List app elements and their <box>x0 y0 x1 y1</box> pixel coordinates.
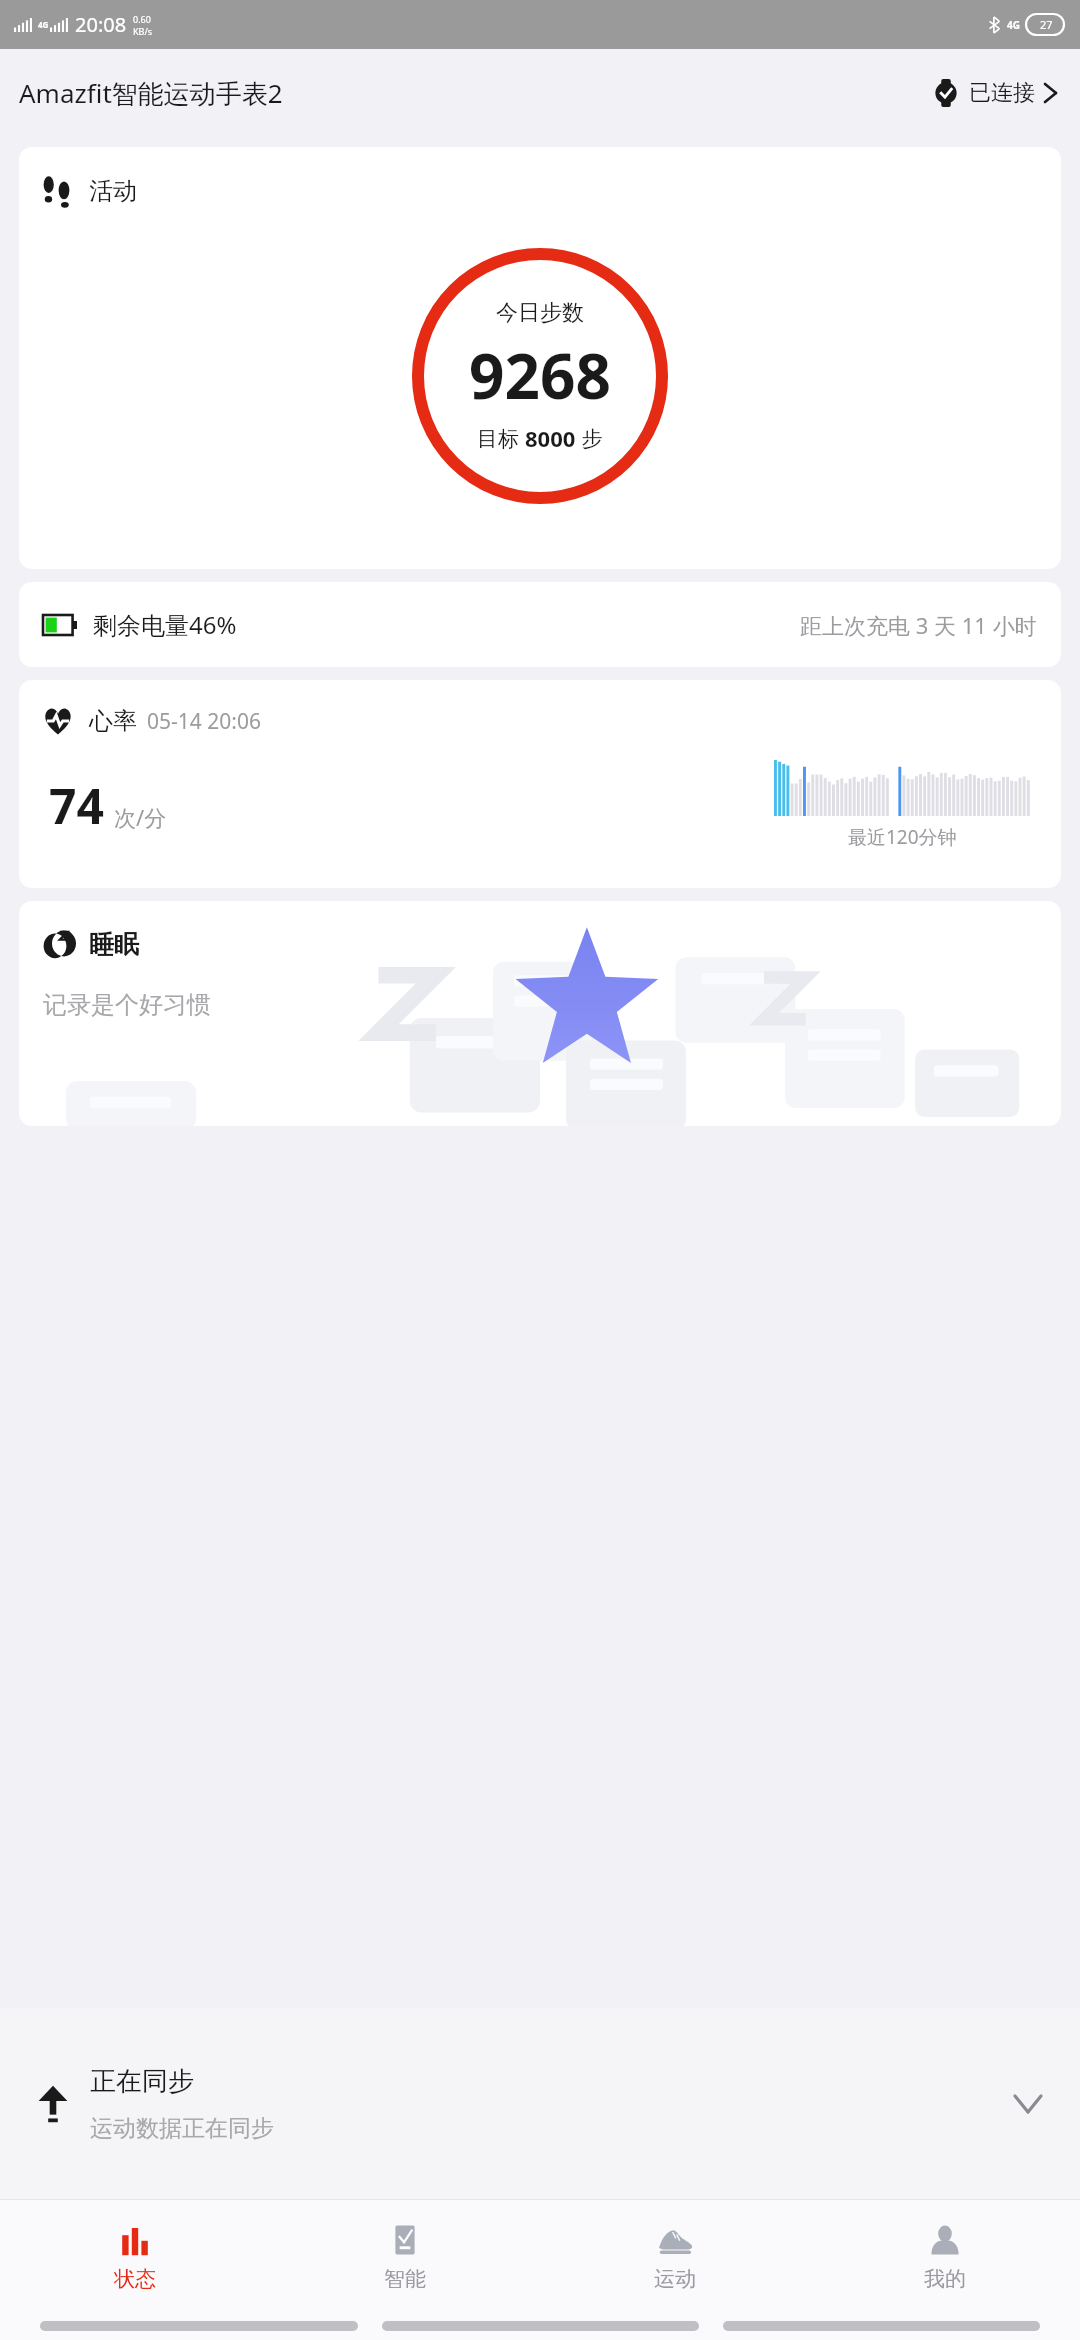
staticText: 运动 <box>654 2266 696 2292</box>
button[interactable]: 活动 <box>19 147 1061 569</box>
other: Collapse <box>1014 2095 1042 2113</box>
staticText: 活动 <box>89 176 137 206</box>
staticText: 我的 <box>924 2266 966 2292</box>
staticText: 状态 <box>114 2266 156 2292</box>
staticText: 0.60 <box>133 13 151 25</box>
staticText: 目标 <box>477 424 525 453</box>
staticText: Amazfit智能运动手表2 <box>19 75 283 111</box>
button[interactable]: 运动 <box>540 2200 810 2312</box>
staticText: 9268 <box>469 333 611 417</box>
button[interactable]: 心率 <box>19 680 1061 888</box>
staticText: 次/分 <box>114 802 167 832</box>
staticText: 步 <box>576 424 603 453</box>
staticText: 睡眠 <box>89 929 139 960</box>
staticText: 05-14 20:06 <box>147 707 261 736</box>
staticText: KB/s <box>133 25 153 37</box>
staticText: 正在同步 <box>90 2065 194 2098</box>
button[interactable]: 睡眠 <box>19 901 1061 1126</box>
staticText: 最近120分钟 <box>848 824 957 850</box>
staticText: 心率 <box>89 706 137 736</box>
staticText: 已连接 <box>969 79 1035 107</box>
staticText: 今日步数 <box>496 299 584 327</box>
staticText: 运动数据正在同步 <box>90 2114 274 2143</box>
staticText: 距上次充电 3 天 11 小时 <box>800 610 1037 640</box>
button[interactable]: 剩余电量46% <box>19 582 1061 667</box>
button[interactable]: 我的 <box>810 2200 1080 2312</box>
button[interactable]: 智能 <box>270 2200 540 2312</box>
staticText: 8000 <box>525 423 576 453</box>
staticText: 20:08 <box>75 11 127 38</box>
button[interactable]: 正在同步 <box>0 2008 1080 2200</box>
staticText: 智能 <box>384 2266 426 2292</box>
staticText: 4G <box>38 19 49 30</box>
staticText: 27 <box>1040 17 1053 32</box>
staticText: 剩余电量46% <box>93 608 237 641</box>
button[interactable]: 状态 <box>0 2200 270 2312</box>
staticText: 记录是个好习惯 <box>43 990 211 1020</box>
staticText: 4G <box>1007 18 1020 32</box>
button[interactable]: 已连接 <box>928 75 1061 111</box>
staticText: 74 <box>49 773 104 838</box>
